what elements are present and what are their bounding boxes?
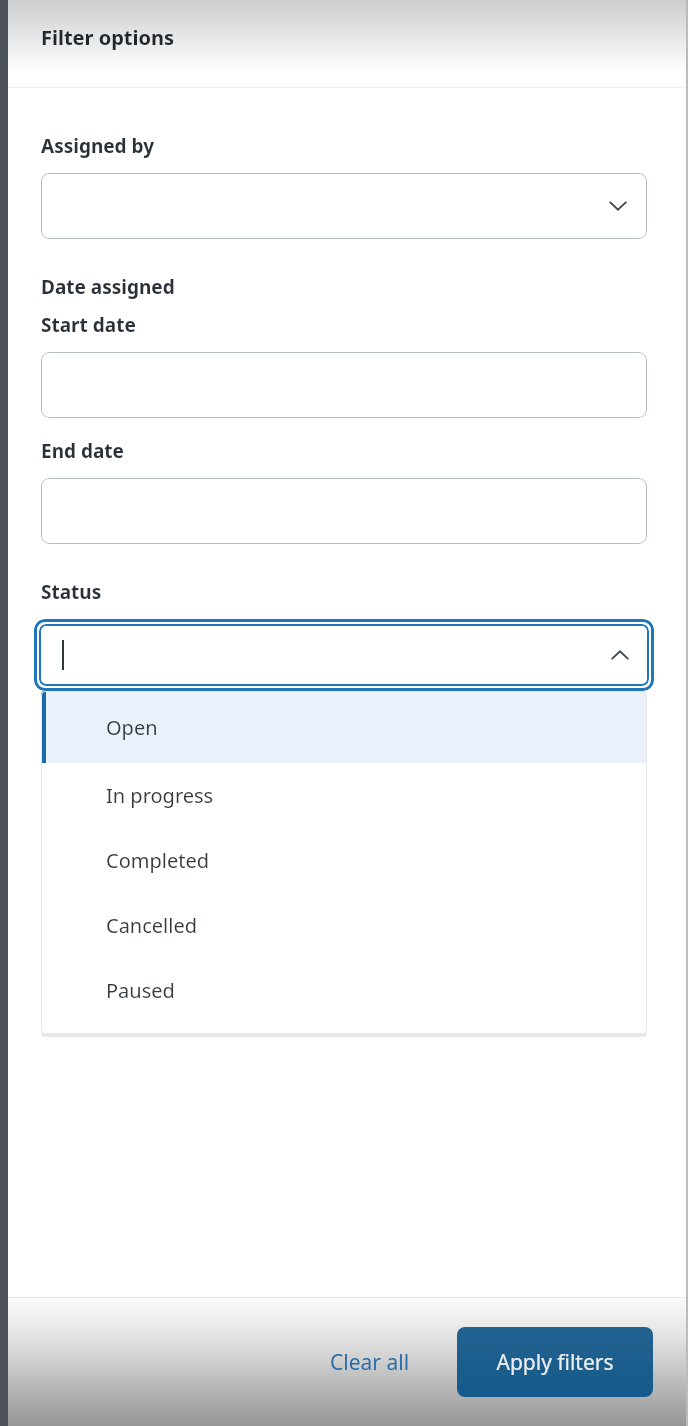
button[interactable]: Completed xyxy=(41,828,647,893)
staticText: Clear all xyxy=(330,1348,410,1377)
staticText: Paused xyxy=(106,977,175,1004)
button[interactable]: Apply filters xyxy=(457,1327,653,1397)
button[interactable]: Start date xyxy=(41,352,647,418)
staticText: Filter options xyxy=(41,24,175,51)
staticText: Apply filters xyxy=(496,1348,614,1377)
button[interactable]: End date xyxy=(41,478,647,544)
staticText: Status xyxy=(41,579,102,605)
staticText: Assigned by xyxy=(41,133,155,159)
other: Open assigned by list xyxy=(605,193,631,219)
button[interactable]: Close status list xyxy=(39,624,649,686)
staticText: In progress xyxy=(106,782,214,809)
button[interactable]: Cancelled xyxy=(41,893,647,958)
button[interactable]: In progress xyxy=(41,763,647,828)
button[interactable]: Open xyxy=(41,691,647,763)
staticText: Cancelled xyxy=(106,912,197,939)
button[interactable]: Paused xyxy=(41,958,647,1023)
button[interactable]: Clear all xyxy=(312,1334,428,1391)
staticText: Date assigned xyxy=(41,274,175,300)
button[interactable]: Open assigned by list xyxy=(41,173,647,239)
staticText: End date xyxy=(41,438,124,464)
staticText: Completed xyxy=(106,847,209,874)
other: Close status list xyxy=(607,642,633,668)
staticText: Start date xyxy=(41,312,136,338)
staticText: Open xyxy=(106,714,158,741)
